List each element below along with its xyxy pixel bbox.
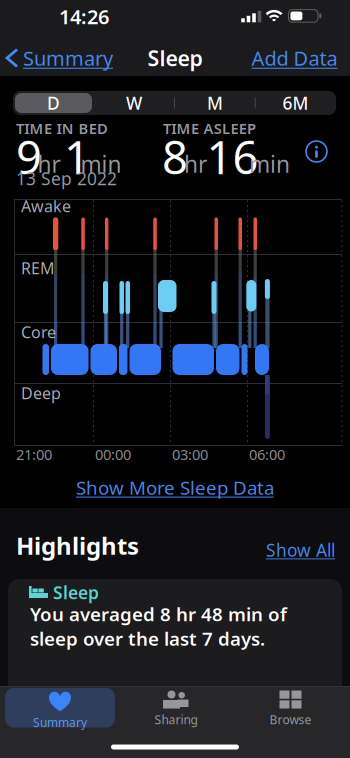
staticText: Show All (266, 538, 335, 561)
staticText: 13 Sep 2022 (16, 167, 117, 190)
staticText: 1 (64, 126, 90, 187)
staticText: Sleep (53, 581, 99, 604)
button[interactable]: Add Data (251, 45, 337, 71)
staticText: Core (21, 321, 56, 343)
button[interactable]: Summary (5, 689, 115, 733)
button[interactable]: Sharing (126, 687, 226, 731)
staticText: 03:00 (172, 444, 208, 464)
staticText: Summary (33, 714, 87, 730)
button[interactable]: Show All (266, 538, 335, 561)
staticText: Sleep (147, 44, 202, 72)
button[interactable]: 6M (257, 91, 335, 114)
staticText: W (126, 91, 142, 114)
staticText: You averaged 8 hr 48 min of (30, 601, 287, 626)
button[interactable]: Sleep (8, 579, 342, 713)
staticText: 21:00 (16, 444, 52, 464)
staticText: Awake (21, 195, 71, 217)
button[interactable] (306, 141, 327, 162)
staticText: 14:26 (59, 3, 109, 30)
staticText: Show More Sleep Data (76, 475, 274, 500)
staticText: M (207, 91, 223, 114)
staticText: min (80, 149, 121, 179)
staticText: hr (184, 149, 207, 179)
staticText: TIME ASLEEP (163, 118, 256, 138)
button[interactable]: W (95, 91, 173, 114)
staticText: REM (21, 257, 55, 279)
staticText: Deep (21, 382, 61, 404)
staticText: 6M (283, 91, 309, 114)
staticText: hr (37, 149, 60, 179)
staticText: 06:00 (249, 444, 285, 464)
button[interactable]: Show More Sleep Data (76, 475, 274, 500)
staticText: Browse (269, 711, 311, 727)
staticText: TIME IN BED (16, 118, 108, 138)
staticText: D (47, 91, 60, 114)
staticText: Summary (23, 45, 113, 71)
staticText: 00:00 (95, 444, 131, 464)
button[interactable]: D (14, 91, 92, 114)
staticText: sleep over the last 7 days. (30, 626, 265, 651)
staticText: 8 (162, 126, 188, 187)
staticText: Add Data (251, 45, 337, 71)
button[interactable]: M (176, 91, 254, 114)
button[interactable]: Summary (7, 45, 113, 71)
staticText: 9 (16, 126, 42, 187)
staticText: Highlights (16, 529, 139, 561)
staticText: Sharing (154, 711, 197, 727)
button[interactable]: Browse (240, 687, 340, 731)
staticText: min (249, 149, 290, 179)
staticText: 16 (206, 126, 258, 187)
